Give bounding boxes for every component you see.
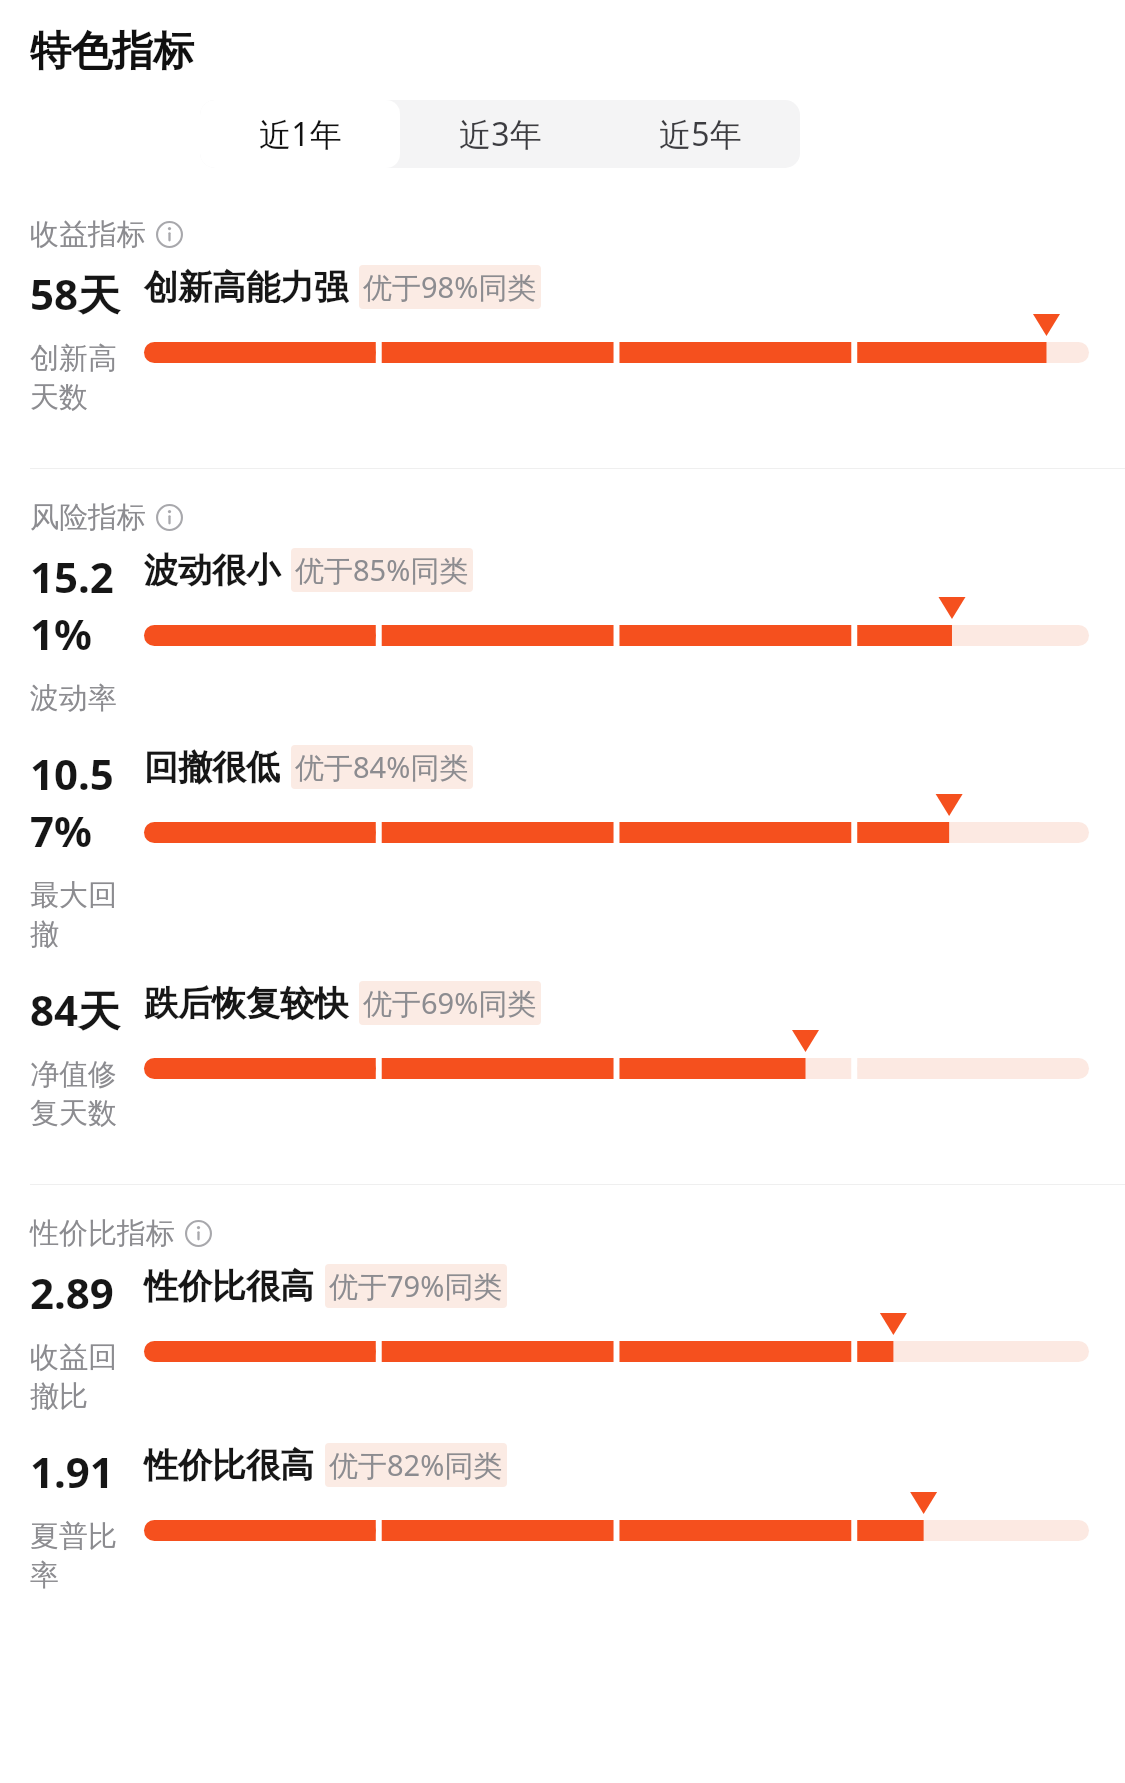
staticText: 近1年: [259, 112, 342, 156]
staticText: 波动率: [30, 680, 117, 717]
staticText: 创新高能力强: [144, 266, 348, 309]
staticText: 性价比指标: [30, 1215, 175, 1252]
button[interactable]: 收益指标: [0, 190, 1125, 261]
other: 收益指标 说明: [156, 221, 183, 248]
staticText: 波动很小: [144, 549, 280, 592]
staticText: 近3年: [459, 112, 542, 156]
staticText: 2.89: [30, 1264, 114, 1321]
button[interactable]: 近1年: [200, 100, 400, 168]
button[interactable]: 风险指标: [0, 469, 1125, 544]
button[interactable]: 10.57%: [0, 731, 1125, 967]
button[interactable]: 1.91: [0, 1429, 1125, 1604]
staticText: 58天: [30, 265, 121, 322]
staticText: 10.57%: [30, 745, 126, 859]
staticText: 优于84%同类: [295, 747, 469, 787]
button[interactable]: 84天: [0, 967, 1125, 1142]
staticText: 优于98%同类: [363, 267, 537, 307]
button[interactable]: 58天: [0, 261, 1125, 426]
staticText: 创新高天数: [30, 340, 126, 416]
staticText: 1.91: [30, 1443, 114, 1500]
staticText: 15.21%: [30, 548, 126, 662]
button[interactable]: 近3年: [400, 100, 600, 168]
staticText: 近5年: [659, 112, 742, 156]
staticText: 优于82%同类: [329, 1445, 503, 1485]
staticText: 收益回撤比: [30, 1339, 126, 1415]
staticText: 回撤很低: [144, 746, 280, 789]
staticText: 性价比很高: [144, 1444, 314, 1487]
button[interactable]: 近5年: [600, 100, 800, 168]
staticText: 收益指标: [30, 216, 146, 253]
staticText: 净值修复天数: [30, 1056, 126, 1132]
staticText: 优于69%同类: [363, 983, 537, 1023]
staticText: 夏普比率: [30, 1518, 126, 1594]
button[interactable]: 15.21%: [0, 544, 1125, 731]
other: 风险指标 说明: [156, 504, 183, 531]
staticText: 优于85%同类: [295, 550, 469, 590]
staticText: 风险指标: [30, 499, 146, 536]
staticText: 最大回撤: [30, 877, 126, 953]
button[interactable]: 性价比指标: [0, 1185, 1125, 1260]
staticText: 优于79%同类: [329, 1266, 503, 1306]
staticText: 特色指标: [30, 26, 194, 78]
button[interactable]: 2.89: [0, 1260, 1125, 1429]
staticText: 性价比很高: [144, 1265, 314, 1308]
staticText: 84天: [30, 981, 121, 1038]
staticText: 跌后恢复较快: [144, 982, 348, 1025]
other: 性价比指标 说明: [185, 1220, 212, 1247]
